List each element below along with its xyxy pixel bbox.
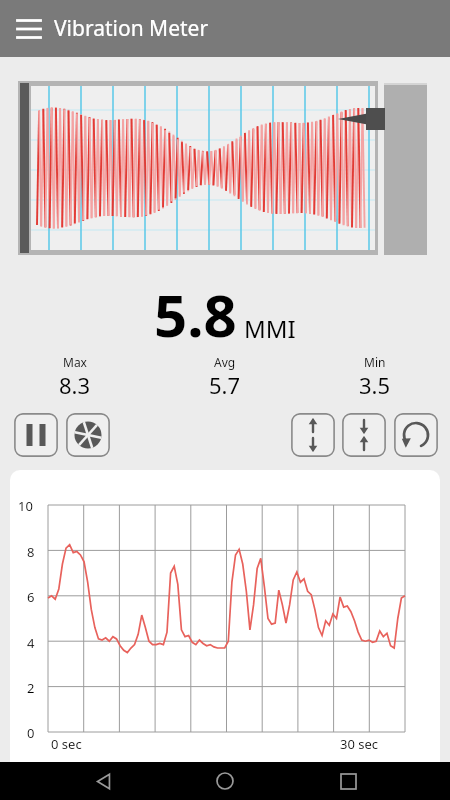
staticText: Max (63, 354, 87, 370)
staticText: 0 sec (51, 735, 82, 753)
staticText: 0 (27, 724, 35, 742)
button[interactable]: Back (83, 762, 123, 800)
button[interactable]: Recent apps (328, 762, 368, 800)
staticText: 10 (18, 497, 33, 515)
button[interactable]: Reset chart (394, 413, 438, 457)
staticText: 8.3 (59, 370, 91, 400)
button[interactable]: Pause (14, 413, 58, 457)
staticText: Avg (214, 354, 236, 370)
button[interactable]: Capture snapshot (66, 413, 110, 457)
staticText: MMI (244, 312, 296, 345)
staticText: 5.7 (209, 370, 241, 400)
staticText: 4 (27, 634, 35, 652)
button[interactable]: Zoom out vertical scale (291, 413, 335, 457)
staticText: 8 (27, 543, 35, 561)
staticText: 5.8 (154, 275, 237, 354)
button[interactable]: Open navigation menu (12, 12, 46, 46)
button[interactable]: Zoom in vertical scale (342, 413, 386, 457)
staticText: 3.5 (359, 370, 391, 400)
staticText: 2 (27, 679, 35, 697)
staticText: 30 sec (340, 735, 379, 753)
staticText: 6 (27, 588, 35, 606)
button[interactable]: Home (205, 762, 245, 800)
button[interactable]: 0 (10, 470, 440, 776)
staticText: Vibration Meter (54, 14, 209, 43)
staticText: Min (364, 354, 386, 370)
